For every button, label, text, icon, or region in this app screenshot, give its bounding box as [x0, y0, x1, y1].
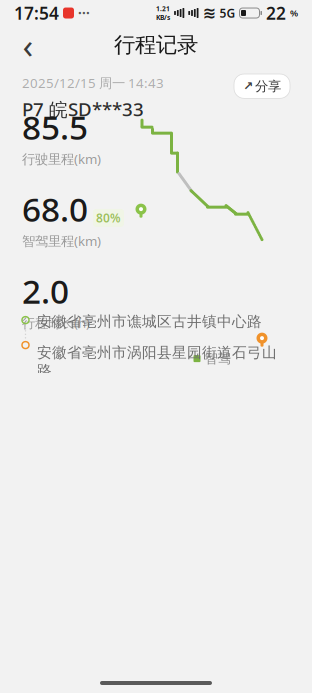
staticText: 68.0: [22, 187, 88, 231]
staticText: 行驶里程(km): [22, 150, 101, 168]
staticText: 5G: [219, 5, 235, 21]
staticText: 分享: [255, 78, 281, 94]
button[interactable]: ↗: [234, 74, 290, 98]
button[interactable]: Back: [6, 27, 50, 63]
staticText: 2.0: [22, 269, 69, 313]
staticText: P7 皖SD***33: [22, 97, 144, 122]
staticText: 22: [266, 1, 286, 24]
staticText: 97.4: [131, 659, 180, 692]
staticText: 智驾: [204, 350, 230, 367]
staticText: ↗: [243, 79, 253, 93]
staticText: 智驾里程(km): [22, 232, 101, 250]
staticText: 2025/12/15 周一 14:43: [22, 74, 164, 92]
staticText: 安徽省亳州市谯城区古井镇中心路: [37, 313, 262, 331]
staticText: %: [290, 7, 298, 19]
staticText: 17:54: [14, 1, 59, 24]
staticText: ≋: [202, 4, 215, 22]
staticText: ···: [78, 4, 90, 22]
staticText: ‹: [22, 22, 33, 68]
staticText: 80%: [96, 210, 121, 226]
staticText: 1.21 KB/s: [156, 4, 170, 22]
staticText: 安徽省亳州市涡阳县星园街道石弓山路: [37, 344, 277, 380]
staticText: 行程记录: [114, 32, 198, 58]
staticText: 行程时长(h): [22, 314, 90, 331]
staticText: 85.5: [22, 105, 88, 149]
